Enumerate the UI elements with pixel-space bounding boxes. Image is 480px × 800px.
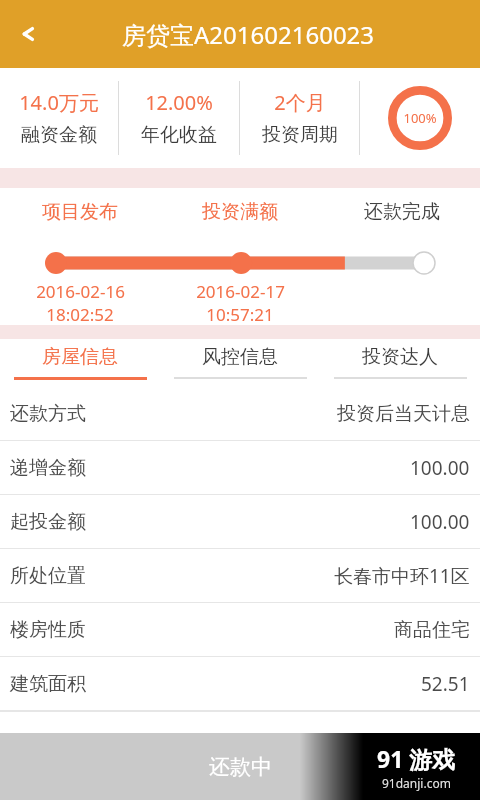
button[interactable]: 风控信息 [160, 339, 320, 387]
staticText: 还款中 [209, 754, 272, 780]
staticText: 91 游戏 [377, 743, 456, 774]
staticText: 2016-02-17 [196, 280, 285, 303]
button[interactable]: 还款方式 [0, 387, 480, 441]
staticText: 楼房性质 [10, 618, 86, 642]
staticText: 房贷宝A201602160023 [122, 18, 375, 51]
staticText: 项目发布 [42, 200, 118, 224]
button[interactable]: 还款中 [0, 733, 480, 800]
staticText: 100.00 [410, 455, 470, 481]
staticText: 所处位置 [10, 564, 86, 588]
staticText: 投资后当天计息 [337, 402, 470, 426]
staticText: 长春市中环11区 [334, 563, 470, 589]
staticText: 递增金额 [10, 456, 86, 480]
staticText: 年化收益 [141, 123, 217, 147]
staticText: 52.51 [421, 671, 470, 697]
staticText: 100% [403, 109, 437, 127]
staticText: 商品住宅 [394, 618, 470, 642]
staticText: 建筑面积 [10, 672, 86, 696]
button[interactable]: Back [0, 6, 56, 62]
staticText: 投资达人 [362, 345, 438, 369]
staticText: 2个月 [274, 89, 326, 116]
staticText: 18:02:52 [46, 303, 114, 326]
staticText: 100.00 [410, 509, 470, 535]
button[interactable]: 楼房性质 [0, 603, 480, 657]
button[interactable]: 投资达人 [320, 339, 480, 387]
staticText: 还款完成 [364, 200, 440, 224]
staticText: 14.0万元 [19, 89, 99, 116]
staticText: 10:57:21 [206, 303, 274, 326]
button[interactable]: 房屋信息 [0, 339, 160, 387]
staticText: 还款方式 [10, 402, 86, 426]
staticText: 起投金额 [10, 510, 86, 534]
staticText: 91danji.com [382, 775, 451, 791]
button[interactable]: 所处位置 [0, 549, 480, 603]
staticText: 投资满额 [202, 200, 278, 224]
button[interactable]: 递增金额 [0, 441, 480, 495]
staticText: 2016-02-16 [36, 280, 125, 303]
staticText: 12.00% [145, 89, 213, 116]
staticText: 融资金额 [21, 123, 97, 147]
staticText: 房屋信息 [42, 345, 118, 369]
button[interactable]: 起投金额 [0, 495, 480, 549]
staticText: 投资周期 [262, 123, 338, 147]
button[interactable]: 建筑面积 [0, 657, 480, 711]
staticText: 风控信息 [202, 345, 278, 369]
